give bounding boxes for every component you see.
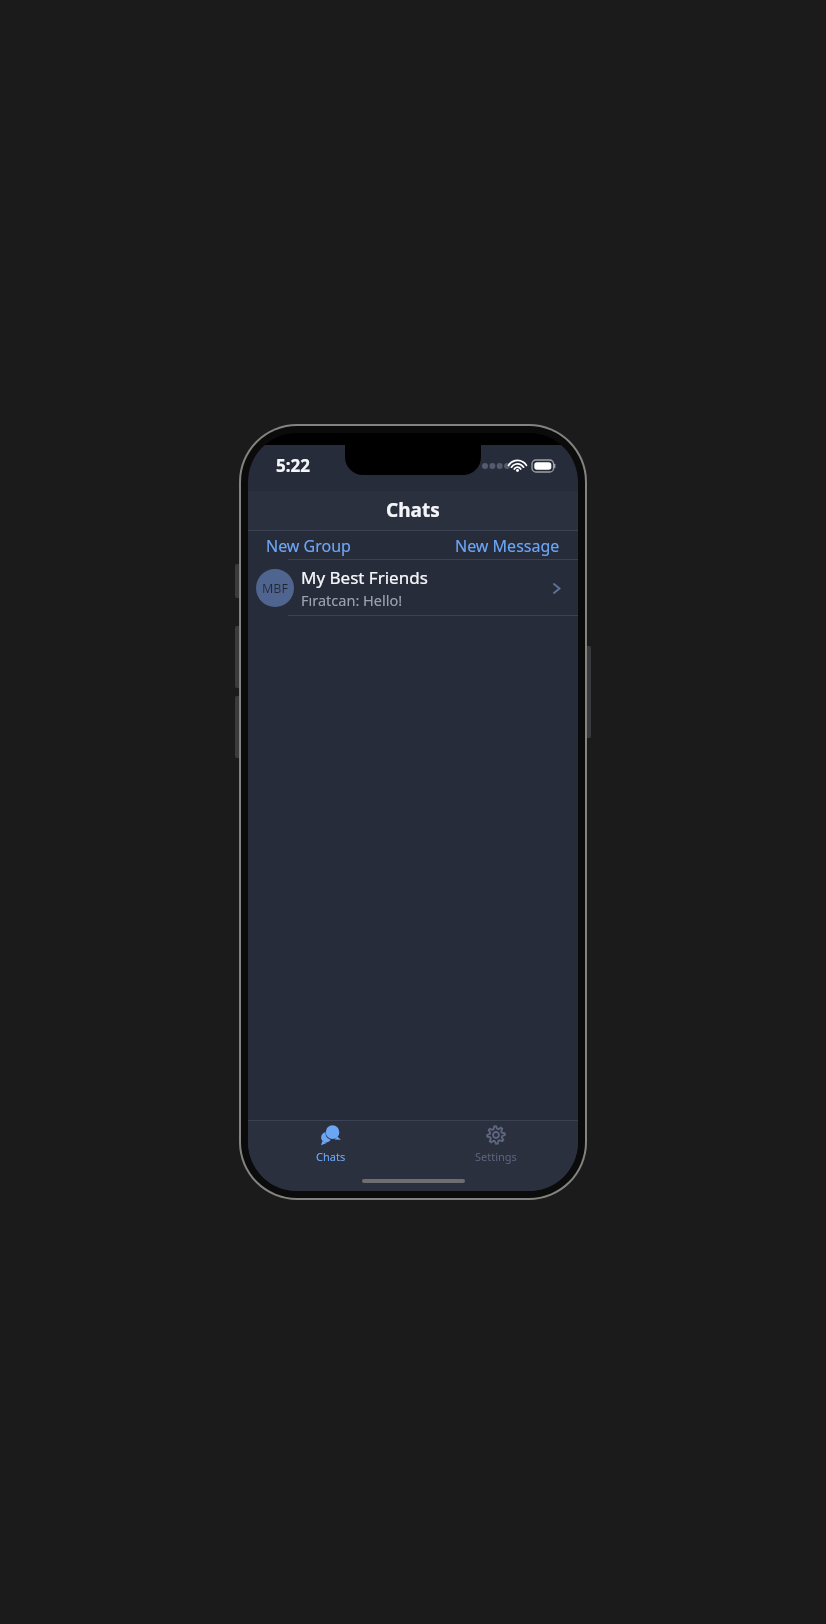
staticText: MBF (262, 580, 288, 597)
staticText: Chats (386, 497, 440, 523)
staticText: Chats (316, 1149, 346, 1164)
button[interactable]: Settings (413, 1121, 578, 1167)
button[interactable]: MBF (248, 560, 578, 616)
button[interactable]: New Message (443, 531, 578, 560)
staticText: My Best Friends (301, 566, 428, 589)
button[interactable]: New Group (248, 531, 363, 560)
staticText: 5:22 (276, 454, 310, 477)
staticText: New Message (455, 535, 560, 557)
staticText: Settings (475, 1149, 517, 1164)
staticText: New Group (266, 535, 351, 557)
staticText: Fıratcan: Hello! (301, 590, 403, 610)
button[interactable]: Chats (248, 1121, 413, 1167)
